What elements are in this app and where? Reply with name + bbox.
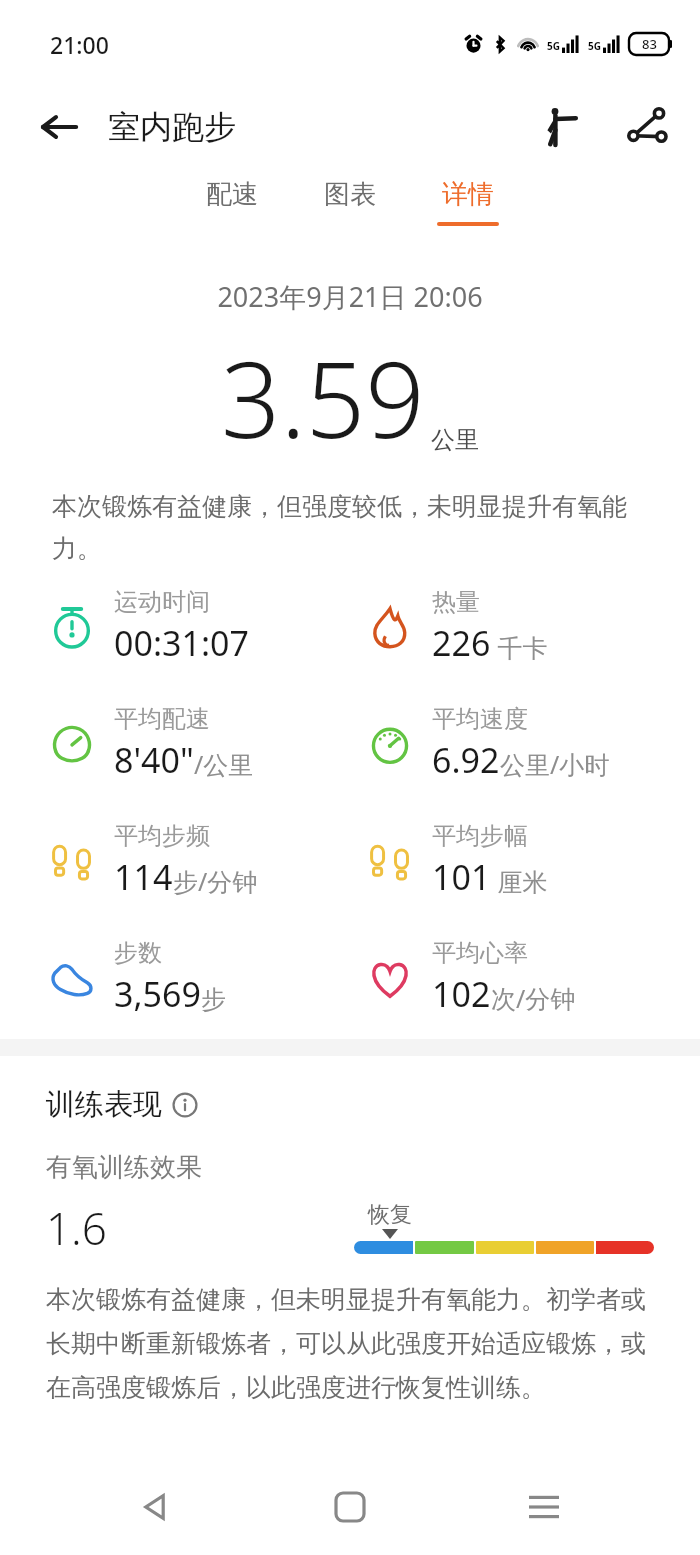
staticText: 226 (432, 620, 491, 666)
staticText: 步/分钟 (173, 864, 258, 898)
button[interactable]: Home (312, 1469, 388, 1545)
button[interactable]: Recents (506, 1469, 582, 1545)
staticText: 平均步幅 (432, 821, 528, 851)
button[interactable]: Back (118, 1469, 194, 1545)
staticText: 平均速度 (432, 704, 528, 734)
staticText: 3.59 (221, 327, 425, 469)
staticText: 8'40" (114, 737, 194, 783)
staticText: 图表 (324, 178, 376, 211)
staticText: 2023年9月21日 20:06 (0, 278, 700, 315)
staticText: 6.92 (432, 737, 500, 783)
staticText: 102 (432, 971, 491, 1017)
button[interactable]: Pose (528, 96, 590, 158)
staticText: 步数 (114, 938, 162, 968)
staticText: 21:00 (50, 29, 109, 60)
staticText: 详情 (442, 178, 494, 211)
staticText: 步 (201, 984, 226, 1015)
button[interactable]: 图表 (317, 178, 383, 222)
other: Info (172, 1092, 198, 1118)
staticText: 5G (547, 39, 560, 53)
staticText: 千卡 (491, 630, 548, 664)
staticText: 次/分钟 (491, 981, 576, 1015)
staticText: 3,569 (114, 971, 201, 1017)
staticText: 114 (114, 854, 173, 900)
button[interactable]: 详情 (435, 178, 501, 226)
staticText: 平均配速 (114, 704, 210, 734)
staticText: 训练表现 (46, 1086, 162, 1123)
staticText: 00:31:07 (114, 620, 249, 666)
staticText: 5G (588, 39, 601, 53)
staticText: 室内跑步 (108, 107, 236, 147)
staticText: 平均步频 (114, 821, 210, 851)
staticText: 公里 (431, 425, 479, 455)
staticText: 热量 (432, 587, 480, 617)
staticText: 本次锻炼有益健康，但未明显提升有氧能力。初学者或长期中断重新锻炼者，可以从此强度… (46, 1284, 654, 1403)
staticText: 运动时间 (114, 587, 210, 617)
staticText: 1.6 (46, 1198, 107, 1258)
staticText: 本次锻炼有益健康，但强度较低，未明显提升有氧能力。 (52, 491, 648, 565)
button[interactable]: 配速 (199, 178, 265, 222)
staticText: 公里/小时 (500, 747, 610, 781)
button[interactable]: Share (616, 96, 678, 158)
staticText: 厘米 (491, 864, 548, 898)
staticText: 有氧训练效果 (46, 1151, 202, 1184)
staticText: 恢复 (368, 1201, 412, 1229)
staticText: 平均心率 (432, 938, 528, 968)
staticText: 83 (642, 35, 657, 53)
button[interactable]: Back (34, 102, 84, 152)
button[interactable]: 训练表现 (46, 1086, 198, 1123)
staticText: 101 (432, 854, 491, 900)
staticText: 配速 (206, 178, 258, 211)
staticText: /公里 (194, 747, 254, 781)
